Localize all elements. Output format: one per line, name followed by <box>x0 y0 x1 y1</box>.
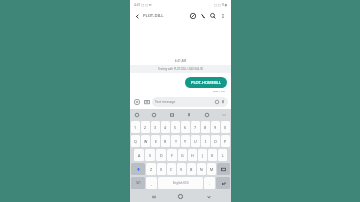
button[interactable]: , <box>146 177 157 189</box>
button[interactable]: Keyboard tool 4 <box>185 111 193 119</box>
button[interactable]: 4 <box>161 121 170 133</box>
staticText: S <box>149 153 151 158</box>
staticText: 1 <box>134 125 137 130</box>
button[interactable]: Text message <box>152 97 228 107</box>
staticText: 2 <box>144 125 147 130</box>
button[interactable]: C <box>167 163 176 175</box>
staticText: C <box>170 167 173 172</box>
button[interactable]: 9 <box>211 121 220 133</box>
button[interactable]: 8 <box>201 121 210 133</box>
button[interactable]: H <box>188 149 197 161</box>
staticText: PLOT-HOMEBLL <box>191 80 221 85</box>
button[interactable]: O <box>211 135 220 147</box>
staticText: B <box>190 167 193 172</box>
staticText: Texting with PLOT-DILL (340) 844-00 <box>130 67 231 71</box>
staticText: Q <box>134 139 137 144</box>
button[interactable]: R <box>161 135 170 147</box>
button[interactable]: 5 <box>171 121 180 133</box>
staticText: R <box>164 139 167 144</box>
button[interactable]: PLOT-DILL <box>143 13 164 19</box>
button[interactable]: U <box>191 135 200 147</box>
button[interactable]: . <box>204 177 215 189</box>
staticText: T <box>175 139 177 144</box>
button[interactable]: Key <box>131 163 145 175</box>
button[interactable]: Keyboard tool 3 <box>168 111 176 119</box>
button[interactable]: B <box>187 163 196 175</box>
button[interactable]: Keyboard tool 5 <box>203 111 211 119</box>
staticText: 7 <box>194 125 197 130</box>
button[interactable]: Search <box>208 11 218 21</box>
staticText: English (US) <box>173 181 189 185</box>
staticText: U <box>194 139 197 144</box>
button[interactable]: Back <box>133 12 142 21</box>
button[interactable]: N <box>197 163 206 175</box>
staticText: !#1 <box>136 181 141 185</box>
staticText: G <box>181 153 184 158</box>
button[interactable]: M <box>207 163 216 175</box>
button[interactable]: Call <box>198 11 208 21</box>
button[interactable]: X <box>157 163 166 175</box>
staticText: J <box>202 153 203 158</box>
button[interactable]: S <box>145 149 155 161</box>
button[interactable]: Recents <box>149 192 158 201</box>
button[interactable]: English (US) <box>158 177 203 189</box>
button[interactable]: I <box>201 135 210 147</box>
button[interactable]: W <box>141 135 150 147</box>
button[interactable]: L <box>218 149 227 161</box>
staticText: 9 <box>214 125 217 130</box>
button[interactable]: Camera <box>142 97 152 107</box>
button[interactable]: Keyboard tool 2 <box>150 111 158 119</box>
staticText: □ □ % ▮ <box>214 3 227 7</box>
button[interactable]: !#1 <box>131 177 145 189</box>
staticText: X <box>160 167 163 172</box>
staticText: 4:41 AM <box>130 59 231 63</box>
button[interactable]: 1 <box>131 121 140 133</box>
button[interactable]: 3 <box>151 121 160 133</box>
staticText: . <box>209 181 210 186</box>
button[interactable]: K <box>208 149 217 161</box>
staticText: H <box>191 153 194 158</box>
button[interactable]: Key <box>216 177 230 189</box>
staticText: D <box>160 153 163 158</box>
button[interactable]: Home <box>176 192 185 201</box>
staticText: 0 <box>224 125 227 130</box>
staticText: I <box>205 139 207 144</box>
button[interactable]: P <box>221 135 230 147</box>
staticText: 8 <box>204 125 207 130</box>
button[interactable]: Add attachment <box>132 97 142 107</box>
button[interactable]: 7 <box>191 121 200 133</box>
button[interactable]: F <box>167 149 177 161</box>
staticText: O <box>214 139 217 144</box>
button[interactable]: D <box>156 149 166 161</box>
button[interactable]: PLOT-HOMEBLL <box>185 77 227 88</box>
staticText: W <box>144 139 148 144</box>
staticText: 4:41 □ □ ✉ <box>134 3 152 7</box>
staticText: 5 <box>174 125 177 130</box>
button[interactable]: 6 <box>181 121 190 133</box>
staticText: P <box>224 139 227 144</box>
staticText: 6 <box>184 125 187 130</box>
staticText: N <box>200 167 203 172</box>
staticText: Z <box>150 167 153 172</box>
button[interactable]: T <box>171 135 180 147</box>
button[interactable]: 0 <box>221 121 230 133</box>
button[interactable]: Keyboard tool 6 <box>220 111 228 119</box>
staticText: 3 <box>154 125 157 130</box>
button[interactable]: Q <box>131 135 140 147</box>
staticText: K <box>211 153 214 158</box>
button[interactable]: G <box>178 149 187 161</box>
button[interactable]: Key <box>217 163 230 175</box>
button[interactable]: Back <box>204 192 213 201</box>
staticText: E <box>155 139 157 144</box>
button[interactable]: More options <box>218 11 228 21</box>
button[interactable]: Video call <box>188 11 198 21</box>
button[interactable]: 2 <box>141 121 150 133</box>
button[interactable]: Z <box>146 163 156 175</box>
button[interactable]: A <box>134 149 144 161</box>
button[interactable]: J <box>198 149 207 161</box>
staticText: L <box>222 153 224 158</box>
button[interactable]: Keyboard tool 1 <box>133 111 141 119</box>
button[interactable]: Y <box>181 135 190 147</box>
button[interactable]: E <box>151 135 160 147</box>
button[interactable]: V <box>177 163 186 175</box>
